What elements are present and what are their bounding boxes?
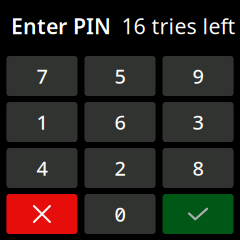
- button[interactable]: 6: [84, 102, 156, 142]
- staticText: 16 tries left: [121, 12, 235, 40]
- staticText: 5: [114, 63, 125, 89]
- button[interactable]: Cancel: [6, 194, 77, 234]
- staticText: 1: [36, 109, 47, 135]
- button[interactable]: 5: [84, 56, 156, 96]
- staticText: 4: [36, 155, 47, 181]
- staticText: Enter PIN: [11, 12, 111, 40]
- button[interactable]: 7: [6, 56, 77, 96]
- staticText: 2: [114, 155, 125, 181]
- staticText: 8: [193, 155, 204, 181]
- staticText: 7: [36, 63, 47, 89]
- button[interactable]: 1: [6, 102, 77, 142]
- button[interactable]: Confirm: [162, 194, 234, 234]
- button[interactable]: 8: [162, 148, 234, 188]
- button[interactable]: 3: [162, 102, 234, 142]
- staticText: 9: [193, 63, 204, 89]
- button[interactable]: 4: [6, 148, 77, 188]
- button[interactable]: 2: [84, 148, 156, 188]
- staticText: 6: [114, 109, 125, 135]
- button[interactable]: 9: [162, 56, 234, 96]
- button[interactable]: 0: [84, 194, 156, 234]
- staticText: 0: [114, 201, 125, 227]
- staticText: 3: [193, 109, 204, 135]
